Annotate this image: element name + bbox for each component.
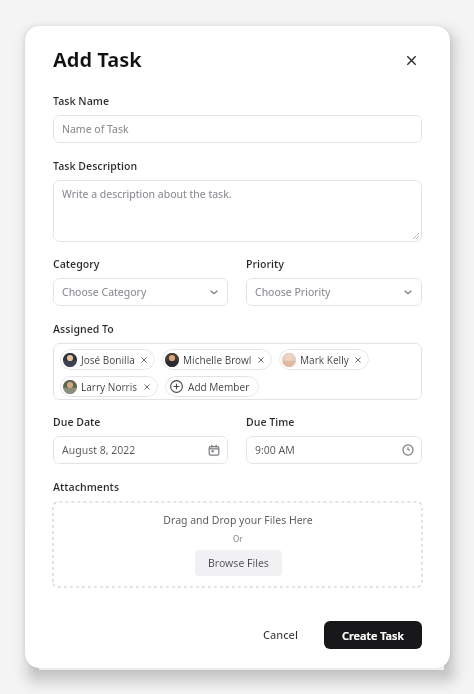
staticText: August 8, 2022	[62, 443, 136, 457]
staticText: Write a description about the task.	[62, 187, 232, 201]
button[interactable]: Choose Priority	[246, 278, 422, 306]
staticText: Due Time	[246, 415, 295, 429]
staticText: Due Date	[53, 415, 101, 429]
staticText: Task Name	[53, 94, 110, 108]
staticText: Choose Priority	[255, 285, 331, 299]
staticText: Drag and Drop your Files Here	[163, 513, 313, 527]
staticText: Larry Norris	[81, 380, 138, 394]
staticText: Attachments	[53, 480, 120, 494]
button[interactable]: Mark Kelly	[279, 349, 369, 370]
staticText: Priority	[246, 257, 285, 271]
button[interactable]: Create Task	[324, 621, 422, 649]
staticText: Browse Files	[208, 556, 269, 570]
staticText: Name of Task	[62, 122, 129, 136]
button[interactable]: 9:00 AM	[246, 436, 422, 464]
button[interactable]: Drag and Drop your Files Here	[53, 502, 422, 587]
button[interactable]: Name of Task	[53, 115, 422, 143]
staticText: Task Description	[53, 159, 138, 173]
staticText: Mark Kelly	[300, 353, 349, 367]
button[interactable]: Browse Files	[195, 550, 282, 576]
button[interactable]: Choose Category	[53, 278, 228, 306]
button[interactable]: Add Member	[165, 376, 259, 397]
staticText: Category	[53, 257, 100, 271]
button[interactable]: Larry Norris	[60, 376, 158, 397]
staticText: Add Member	[188, 380, 250, 394]
staticText: José Bonilla	[81, 353, 135, 367]
button[interactable]: Michelle Browl	[162, 349, 272, 370]
button[interactable]: José Bonilla	[60, 349, 155, 370]
staticText: Or	[233, 533, 243, 544]
button[interactable]: Close	[400, 49, 422, 71]
staticText: Assigned To	[53, 322, 114, 336]
staticText: 9:00 AM	[255, 443, 295, 457]
staticText: Add Task	[53, 46, 142, 73]
staticText: Choose Category	[62, 285, 147, 299]
button[interactable]: August 8, 2022	[53, 436, 228, 464]
staticText: Cancel	[263, 627, 298, 642]
staticText: Michelle Browl	[183, 353, 252, 367]
button[interactable]: Cancel	[253, 619, 308, 650]
button[interactable]: Write a description about the task.	[53, 180, 422, 242]
staticText: Create Task	[342, 628, 404, 643]
